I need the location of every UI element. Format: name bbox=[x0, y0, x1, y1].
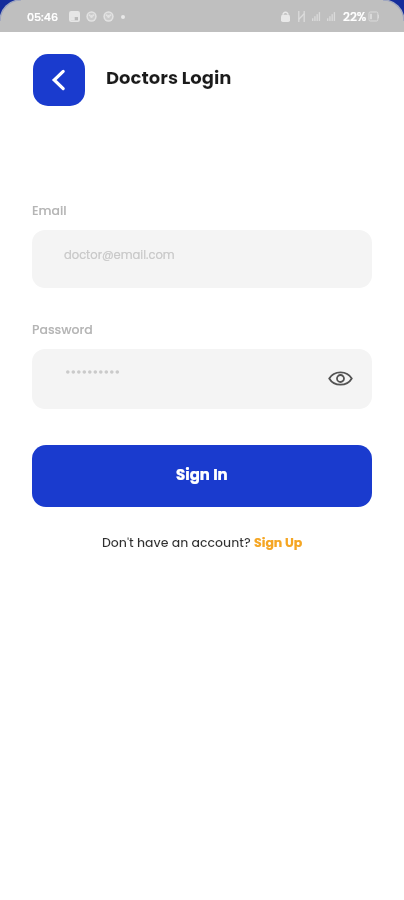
button[interactable]: Sign Up bbox=[254, 534, 303, 551]
button[interactable]: Sign In bbox=[32, 445, 372, 507]
staticText: Doctors Login bbox=[106, 65, 232, 90]
button[interactable]: Back bbox=[33, 54, 85, 106]
staticText: Don't have an account? bbox=[102, 534, 254, 551]
staticText: Sign Up bbox=[254, 534, 303, 551]
staticText: Sign In bbox=[176, 464, 228, 485]
staticText: Password bbox=[32, 321, 93, 338]
staticText: 22% bbox=[343, 8, 367, 25]
button[interactable]: doctor@email.com bbox=[32, 230, 372, 288]
staticText: doctor@email.com bbox=[64, 247, 175, 263]
staticText: Email bbox=[32, 202, 67, 219]
button[interactable]: Show password bbox=[32, 349, 372, 409]
button[interactable]: Show password bbox=[323, 361, 357, 395]
staticText: 05:46 bbox=[27, 9, 58, 24]
